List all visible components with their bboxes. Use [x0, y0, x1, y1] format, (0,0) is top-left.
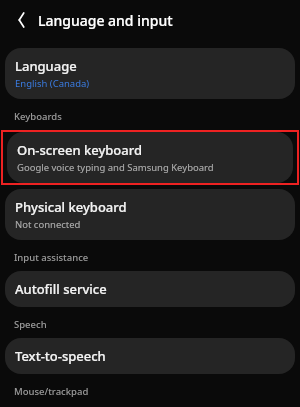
- staticText: Language: [15, 57, 77, 75]
- button[interactable]: Text-to-speech: [5, 338, 295, 374]
- staticText: Google voice typing and Samsung Keyboard: [17, 161, 214, 174]
- button[interactable]: Autofill service: [5, 271, 295, 307]
- staticText: Language and input: [38, 11, 173, 30]
- button[interactable]: Physical keyboard: [5, 189, 295, 240]
- button[interactable]: Back: [8, 8, 32, 32]
- staticText: Speech: [14, 318, 47, 331]
- staticText: Text-to-speech: [15, 347, 106, 365]
- staticText: Not connected: [15, 218, 81, 231]
- staticText: On-screen keyboard: [17, 141, 142, 159]
- staticText: Input assistance: [14, 251, 89, 264]
- staticText: English (Canada): [15, 77, 90, 90]
- staticText: Mouse/trackpad: [14, 385, 89, 398]
- staticText: Autofill service: [15, 280, 107, 298]
- staticText: Physical keyboard: [15, 198, 127, 216]
- staticText: Keyboards: [14, 110, 62, 123]
- button[interactable]: On-screen keyboard: [7, 132, 293, 183]
- button[interactable]: Language: [5, 48, 295, 99]
